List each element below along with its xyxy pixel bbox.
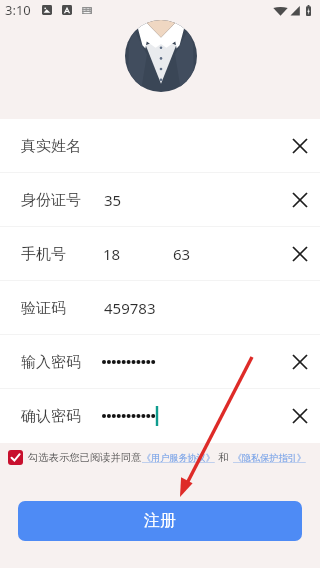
button[interactable]: 身份证号 <box>0 173 320 226</box>
button[interactable]: 手机号 <box>0 227 320 280</box>
button[interactable]: Clear <box>285 185 315 215</box>
staticText: 确认密码 <box>21 407 81 426</box>
button[interactable]: 注册 <box>18 501 302 541</box>
staticText: 18 <box>103 244 121 264</box>
staticText: 输入密码 <box>21 353 81 372</box>
button[interactable]: 《用户服务协议》 <box>142 452 215 463</box>
button[interactable]: 《隐私保护指引》 <box>233 452 306 463</box>
button[interactable]: Clear <box>285 401 315 431</box>
button[interactable]: 输入密码 <box>0 335 320 388</box>
staticText: 勾选表示您已阅读并同意 <box>28 451 142 464</box>
staticText: 63 <box>173 244 191 264</box>
staticText: 真实姓名 <box>21 137 81 156</box>
staticText: 身份证号 <box>21 191 81 210</box>
button[interactable]: 验证码 <box>0 281 320 334</box>
button[interactable]: Clear <box>285 239 315 269</box>
staticText: 459783 <box>104 298 156 318</box>
staticText: 注册 <box>144 511 176 531</box>
button[interactable]: Clear <box>285 347 315 377</box>
button[interactable]: Agree to terms checkbox <box>8 450 23 465</box>
staticText: 验证码 <box>21 299 66 318</box>
staticText: 3:10 <box>5 1 31 19</box>
staticText: 35 <box>104 190 122 210</box>
staticText: 和 <box>218 451 229 464</box>
staticText: 手机号 <box>21 245 66 264</box>
button[interactable]: 真实姓名 <box>0 119 320 172</box>
button[interactable]: Clear <box>285 131 315 161</box>
button[interactable]: 确认密码 <box>0 389 320 442</box>
